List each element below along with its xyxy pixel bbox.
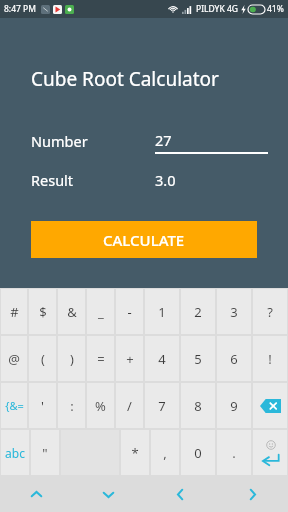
button[interactable]: ! bbox=[253, 336, 287, 381]
button[interactable]: , bbox=[151, 430, 179, 475]
button[interactable]: Scroll up bbox=[0, 476, 72, 512]
staticText: 9 bbox=[230, 397, 238, 415]
staticText: / bbox=[127, 397, 132, 415]
staticText: 41% bbox=[267, 3, 284, 15]
staticText: 3.0 bbox=[155, 170, 176, 190]
button[interactable]: - bbox=[116, 289, 143, 334]
staticText: ' bbox=[41, 397, 44, 415]
staticText: 8 bbox=[194, 397, 202, 415]
staticText: ? bbox=[267, 303, 273, 321]
staticText: , bbox=[163, 444, 167, 462]
staticText: ! bbox=[268, 350, 272, 368]
staticText: Result bbox=[31, 170, 74, 190]
button[interactable]: 6 bbox=[217, 336, 251, 381]
staticText: 4 bbox=[158, 350, 166, 368]
staticText: Cube Root Calculator bbox=[31, 66, 219, 92]
button[interactable]: # bbox=[1, 289, 27, 334]
staticText: : bbox=[70, 397, 74, 415]
button[interactable]: 8 bbox=[181, 383, 215, 428]
button[interactable]: % bbox=[87, 383, 114, 428]
staticText: {&= bbox=[5, 398, 24, 413]
button[interactable]: 9 bbox=[217, 383, 251, 428]
button[interactable]: ) bbox=[58, 336, 85, 381]
button[interactable]: 3 bbox=[217, 289, 251, 334]
button[interactable]: + bbox=[116, 336, 143, 381]
staticText: 1 bbox=[158, 303, 166, 321]
staticText: & bbox=[67, 303, 77, 321]
staticText: + bbox=[126, 350, 134, 368]
button[interactable]: : bbox=[58, 383, 85, 428]
staticText: " bbox=[42, 444, 48, 462]
button[interactable]: 5 bbox=[181, 336, 215, 381]
button[interactable]: 2 bbox=[181, 289, 215, 334]
button[interactable]: . bbox=[217, 430, 251, 475]
button[interactable]: CALCULATE bbox=[31, 221, 257, 258]
staticText: 8:47 PM bbox=[4, 3, 36, 15]
button[interactable]: 0 bbox=[181, 430, 215, 475]
button[interactable]: ? bbox=[253, 289, 287, 334]
staticText: $ bbox=[39, 303, 47, 321]
button[interactable]: " bbox=[31, 430, 59, 475]
staticText: @ bbox=[8, 350, 20, 368]
staticText: 3 bbox=[230, 303, 238, 321]
button[interactable]: = bbox=[87, 336, 114, 381]
button[interactable]: ( bbox=[29, 336, 56, 381]
button[interactable]: Previous bbox=[144, 476, 216, 512]
button[interactable]: _ bbox=[87, 289, 114, 334]
button[interactable]: / bbox=[116, 383, 143, 428]
staticText: . bbox=[232, 444, 236, 462]
button[interactable]: ' bbox=[29, 383, 56, 428]
staticText: abc bbox=[5, 445, 25, 461]
staticText: - bbox=[127, 303, 132, 321]
staticText: # bbox=[10, 303, 19, 321]
staticText: = bbox=[97, 350, 105, 368]
staticText: 2 bbox=[194, 303, 202, 321]
button[interactable]: abc bbox=[1, 430, 29, 475]
button[interactable]: {&= bbox=[1, 383, 27, 428]
staticText: ) bbox=[70, 350, 74, 368]
button[interactable]: * bbox=[121, 430, 149, 475]
staticText: _ bbox=[98, 303, 104, 321]
staticText: * bbox=[131, 444, 139, 462]
staticText: % bbox=[95, 397, 106, 415]
staticText: 5 bbox=[194, 350, 202, 368]
staticText: PILDYK 4G bbox=[196, 3, 238, 15]
button[interactable]: 1 bbox=[145, 289, 179, 334]
staticText: Number bbox=[31, 131, 88, 151]
button[interactable]: Backspace bbox=[253, 383, 287, 428]
button[interactable]: Enter bbox=[253, 430, 287, 475]
staticText: 7 bbox=[158, 397, 166, 415]
button[interactable]: $ bbox=[29, 289, 56, 334]
staticText: CALCULATE bbox=[103, 230, 185, 250]
staticText: ( bbox=[41, 350, 45, 368]
staticText: 0 bbox=[194, 444, 202, 462]
button[interactable]: Scroll down bbox=[72, 476, 144, 512]
staticText: 6 bbox=[230, 350, 238, 368]
button[interactable]: @ bbox=[1, 336, 27, 381]
button[interactable]: & bbox=[58, 289, 85, 334]
button[interactable]: Next bbox=[216, 476, 288, 512]
button[interactable]: 4 bbox=[145, 336, 179, 381]
staticText: 27 bbox=[155, 130, 172, 150]
button[interactable]: 7 bbox=[145, 383, 179, 428]
